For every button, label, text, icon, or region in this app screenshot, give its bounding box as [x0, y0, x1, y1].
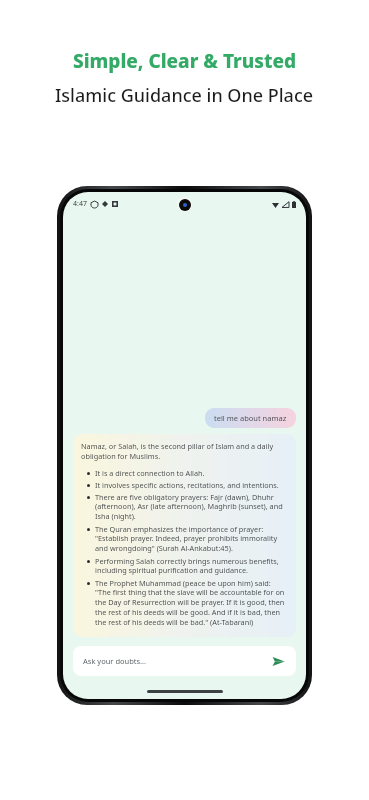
staticText: tell me about namaz	[214, 413, 287, 423]
staticText: Namaz, or Salah, is the second pillar of…	[81, 441, 288, 461]
staticText: It is a direct connection to Allah.	[95, 468, 205, 478]
button[interactable]: Send	[270, 653, 286, 669]
staticText: Simple, Clear & Trusted	[73, 48, 297, 74]
button[interactable]: Namaz, or Salah, is the second pillar of…	[73, 434, 296, 637]
button[interactable]: Ask your doubts...	[73, 646, 296, 676]
staticText: Performing Salah correctly brings numero…	[95, 556, 288, 576]
staticText: The Prophet Muhammad (peace be upon him)…	[95, 578, 288, 628]
staticText: The Quran emphasizes the importance of p…	[95, 524, 288, 554]
staticText: Islamic Guidance in One Place	[55, 83, 314, 108]
staticText: 4:47	[73, 199, 87, 209]
staticText: Ask your doubts...	[83, 656, 147, 666]
staticText: It involves specific actions, recitation…	[95, 480, 279, 490]
staticText: There are five obligatory prayers: Fajr …	[95, 492, 288, 522]
button[interactable]: tell me about namaz	[205, 408, 296, 428]
